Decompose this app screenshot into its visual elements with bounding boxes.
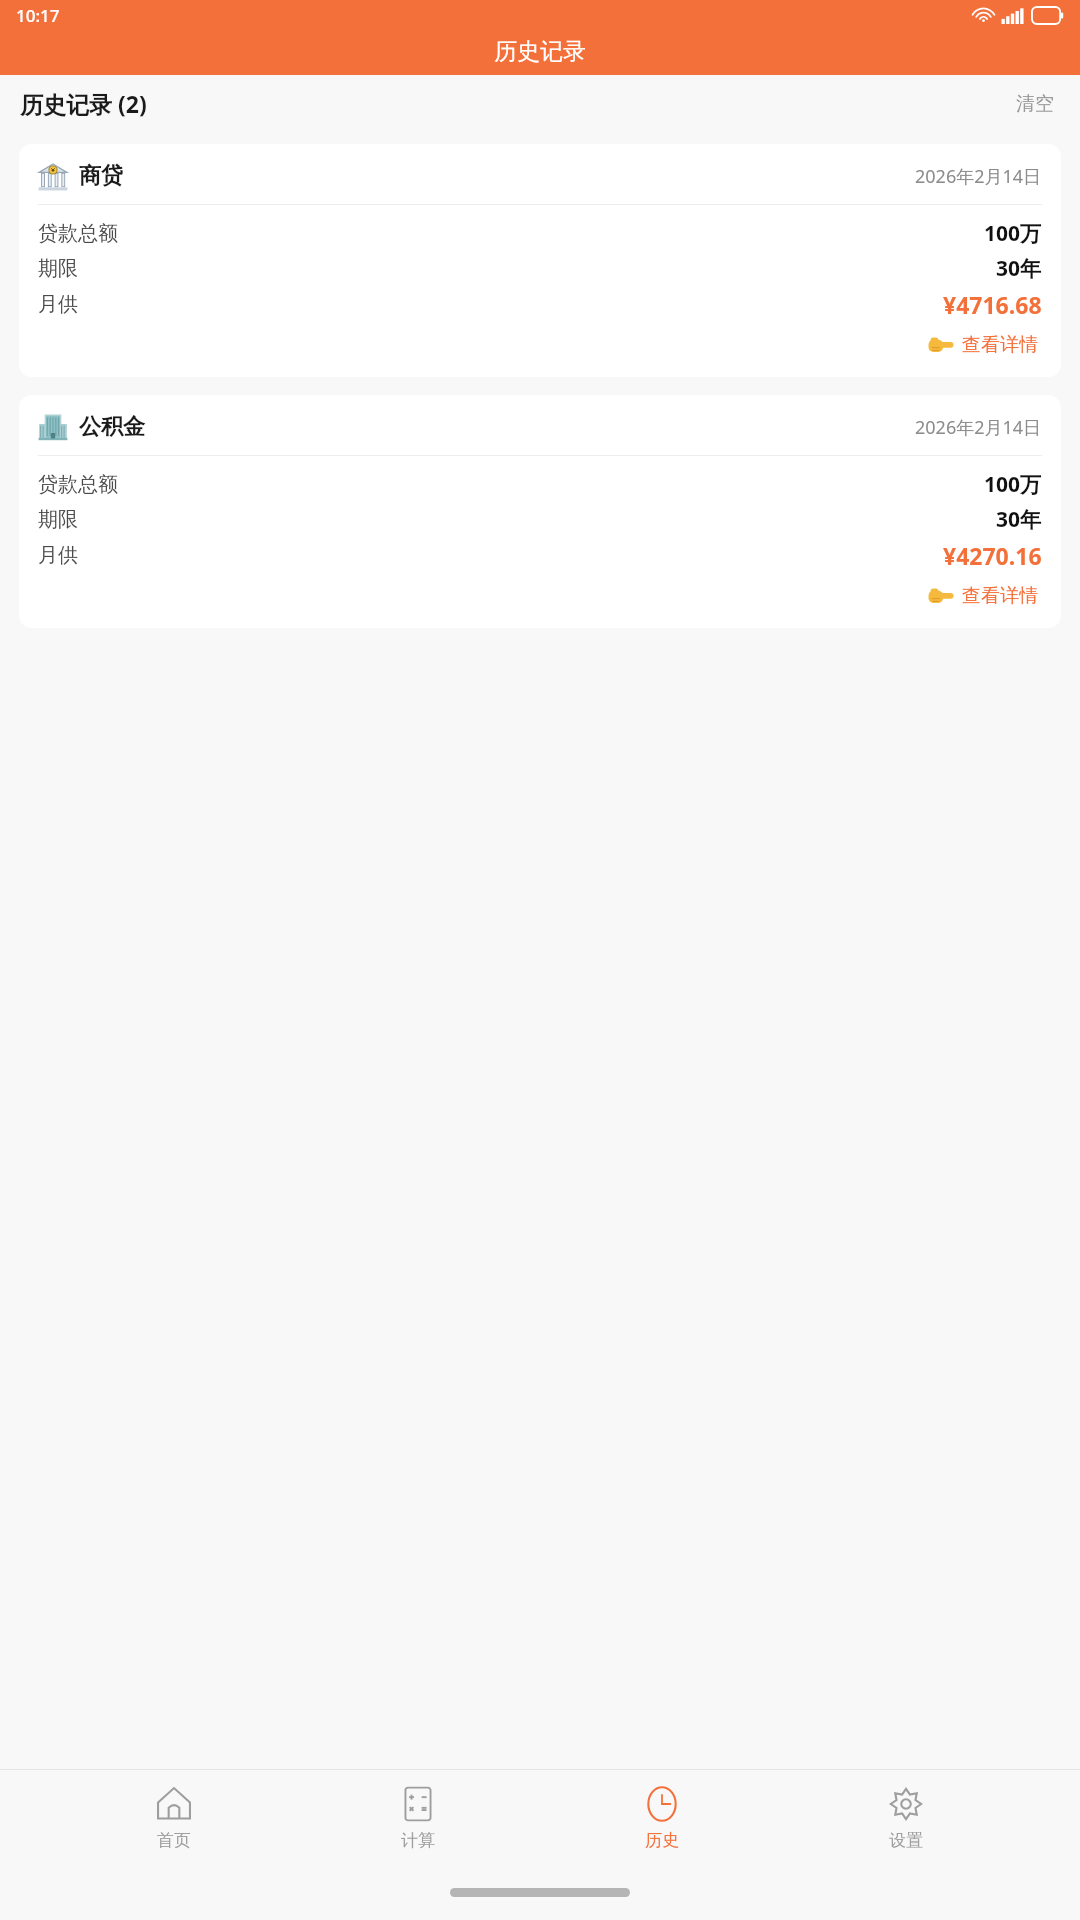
staticText: 历史 (645, 1830, 679, 1851)
staticText: 月供 (38, 543, 78, 568)
staticText: 月供 (38, 292, 78, 317)
staticText: 2026年2月14日 (915, 164, 1042, 189)
button[interactable]: 商贷 (19, 144, 1061, 377)
other: 首页 (155, 1785, 193, 1823)
button[interactable]: 历史 (592, 1779, 732, 1857)
other: 计算 (399, 1785, 437, 1823)
staticText: ¥4716.68 (943, 289, 1042, 320)
staticText: 首页 (157, 1830, 191, 1851)
staticText: 100万 (984, 470, 1042, 499)
staticText: 清空 (1016, 92, 1054, 116)
staticText: 贷款总额 (38, 221, 118, 246)
button[interactable]: 设置 (836, 1779, 976, 1857)
button[interactable]: 首页 (104, 1779, 244, 1857)
button[interactable]: 计算 (348, 1779, 488, 1857)
staticText: 10:17 (16, 4, 60, 27)
other: 历史 (643, 1785, 681, 1823)
staticText: 设置 (889, 1830, 923, 1851)
staticText: 期限 (38, 507, 78, 532)
staticText: 30年 (996, 505, 1042, 534)
staticText: 公积金 (79, 413, 145, 441)
staticText: 2026年2月14日 (915, 415, 1042, 440)
staticText: 计算 (401, 1830, 435, 1851)
other: 设置 (887, 1785, 925, 1823)
staticText: 贷款总额 (38, 472, 118, 497)
staticText: 查看详情 (962, 584, 1038, 608)
button[interactable]: 查看详情 (924, 330, 1042, 360)
staticText: 历史记录 (494, 37, 586, 66)
button[interactable]: 公积金 (19, 395, 1061, 628)
staticText: 100万 (984, 219, 1042, 248)
staticText: 商贷 (79, 162, 123, 190)
button[interactable]: 查看详情 (924, 581, 1042, 611)
staticText: 30年 (996, 254, 1042, 283)
button[interactable]: 清空 (1010, 88, 1060, 120)
staticText: ¥4270.16 (943, 540, 1042, 571)
staticText: 期限 (38, 256, 78, 281)
staticText: 历史记录 (2) (20, 88, 147, 119)
staticText: 查看详情 (962, 333, 1038, 357)
